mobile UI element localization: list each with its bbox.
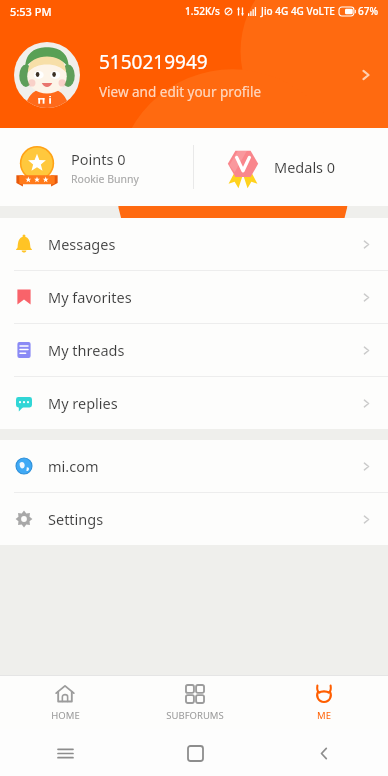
staticText: SUBFORUMS [166,709,224,722]
button[interactable]: Points 0 [0,128,193,206]
staticText: ME [317,709,331,722]
staticText: 67% [358,4,378,18]
button[interactable]: ME [259,676,388,729]
button[interactable]: Settings [0,493,388,545]
button[interactable]: HOME [0,676,130,729]
button[interactable]: 5150219949 [0,22,388,128]
staticText: My replies [48,393,118,413]
staticText: Jio 4G 4G VoLTE [261,4,335,18]
staticText: Medals 0 [274,157,336,177]
other: Open profile [356,65,376,85]
staticText: Settings [48,509,104,529]
staticText: Rookie Bunny [71,172,139,186]
staticText: 5:53 PM [10,4,52,19]
staticText: My threads [48,340,125,360]
button[interactable]: My threads [0,324,388,376]
button[interactable]: Recents [48,736,82,770]
staticText: mi.com [48,456,99,476]
button[interactable]: mi.com [0,440,388,492]
staticText: 1.52K/s [185,4,220,18]
staticText: 5150219949 [99,49,208,75]
button[interactable]: My favorites [0,271,388,323]
button[interactable]: Medals 0 [194,128,388,206]
staticText: My favorites [48,287,132,307]
staticText: View and edit your profile [99,83,262,101]
button[interactable]: Back [307,736,341,770]
button[interactable]: My replies [0,377,388,429]
button[interactable]: Home [178,736,212,770]
staticText: HOME [51,709,80,722]
button[interactable]: SUBFORUMS [130,676,259,729]
button[interactable]: Messages [0,218,388,270]
staticText: Messages [48,234,116,254]
staticText: Points 0 [71,149,126,169]
